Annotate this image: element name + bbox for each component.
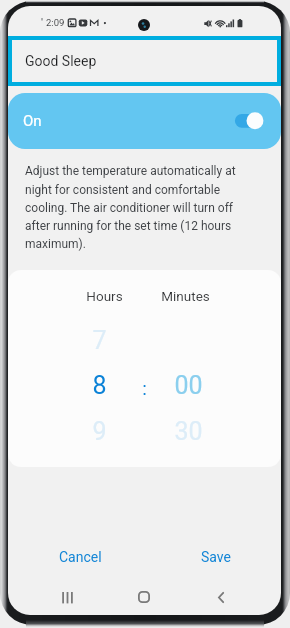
staticText: 30 xyxy=(174,417,203,446)
staticText: 9 xyxy=(92,417,107,446)
staticText: Adjust the temperature automatically at … xyxy=(25,164,249,250)
button[interactable]: Home xyxy=(122,577,166,615)
staticText: 2:09 xyxy=(46,17,65,28)
staticText: On xyxy=(23,112,42,130)
staticText: Good Sleep xyxy=(25,53,97,69)
staticText: Minutes xyxy=(161,288,210,304)
button[interactable]: Back xyxy=(199,577,243,615)
button[interactable]: Cancel xyxy=(40,539,120,575)
staticText: 00 xyxy=(174,371,203,400)
staticText: Hours xyxy=(86,288,123,304)
staticText: 8 xyxy=(92,371,107,400)
staticText: Save xyxy=(201,549,231,565)
staticText: 7 xyxy=(92,326,107,355)
button[interactable]: Recent apps xyxy=(45,577,89,615)
staticText: : xyxy=(142,377,147,399)
button[interactable]: Good Sleep xyxy=(8,36,281,86)
staticText: Cancel xyxy=(59,549,102,565)
button[interactable]: Save xyxy=(176,539,256,575)
button[interactable]: On xyxy=(8,93,281,149)
